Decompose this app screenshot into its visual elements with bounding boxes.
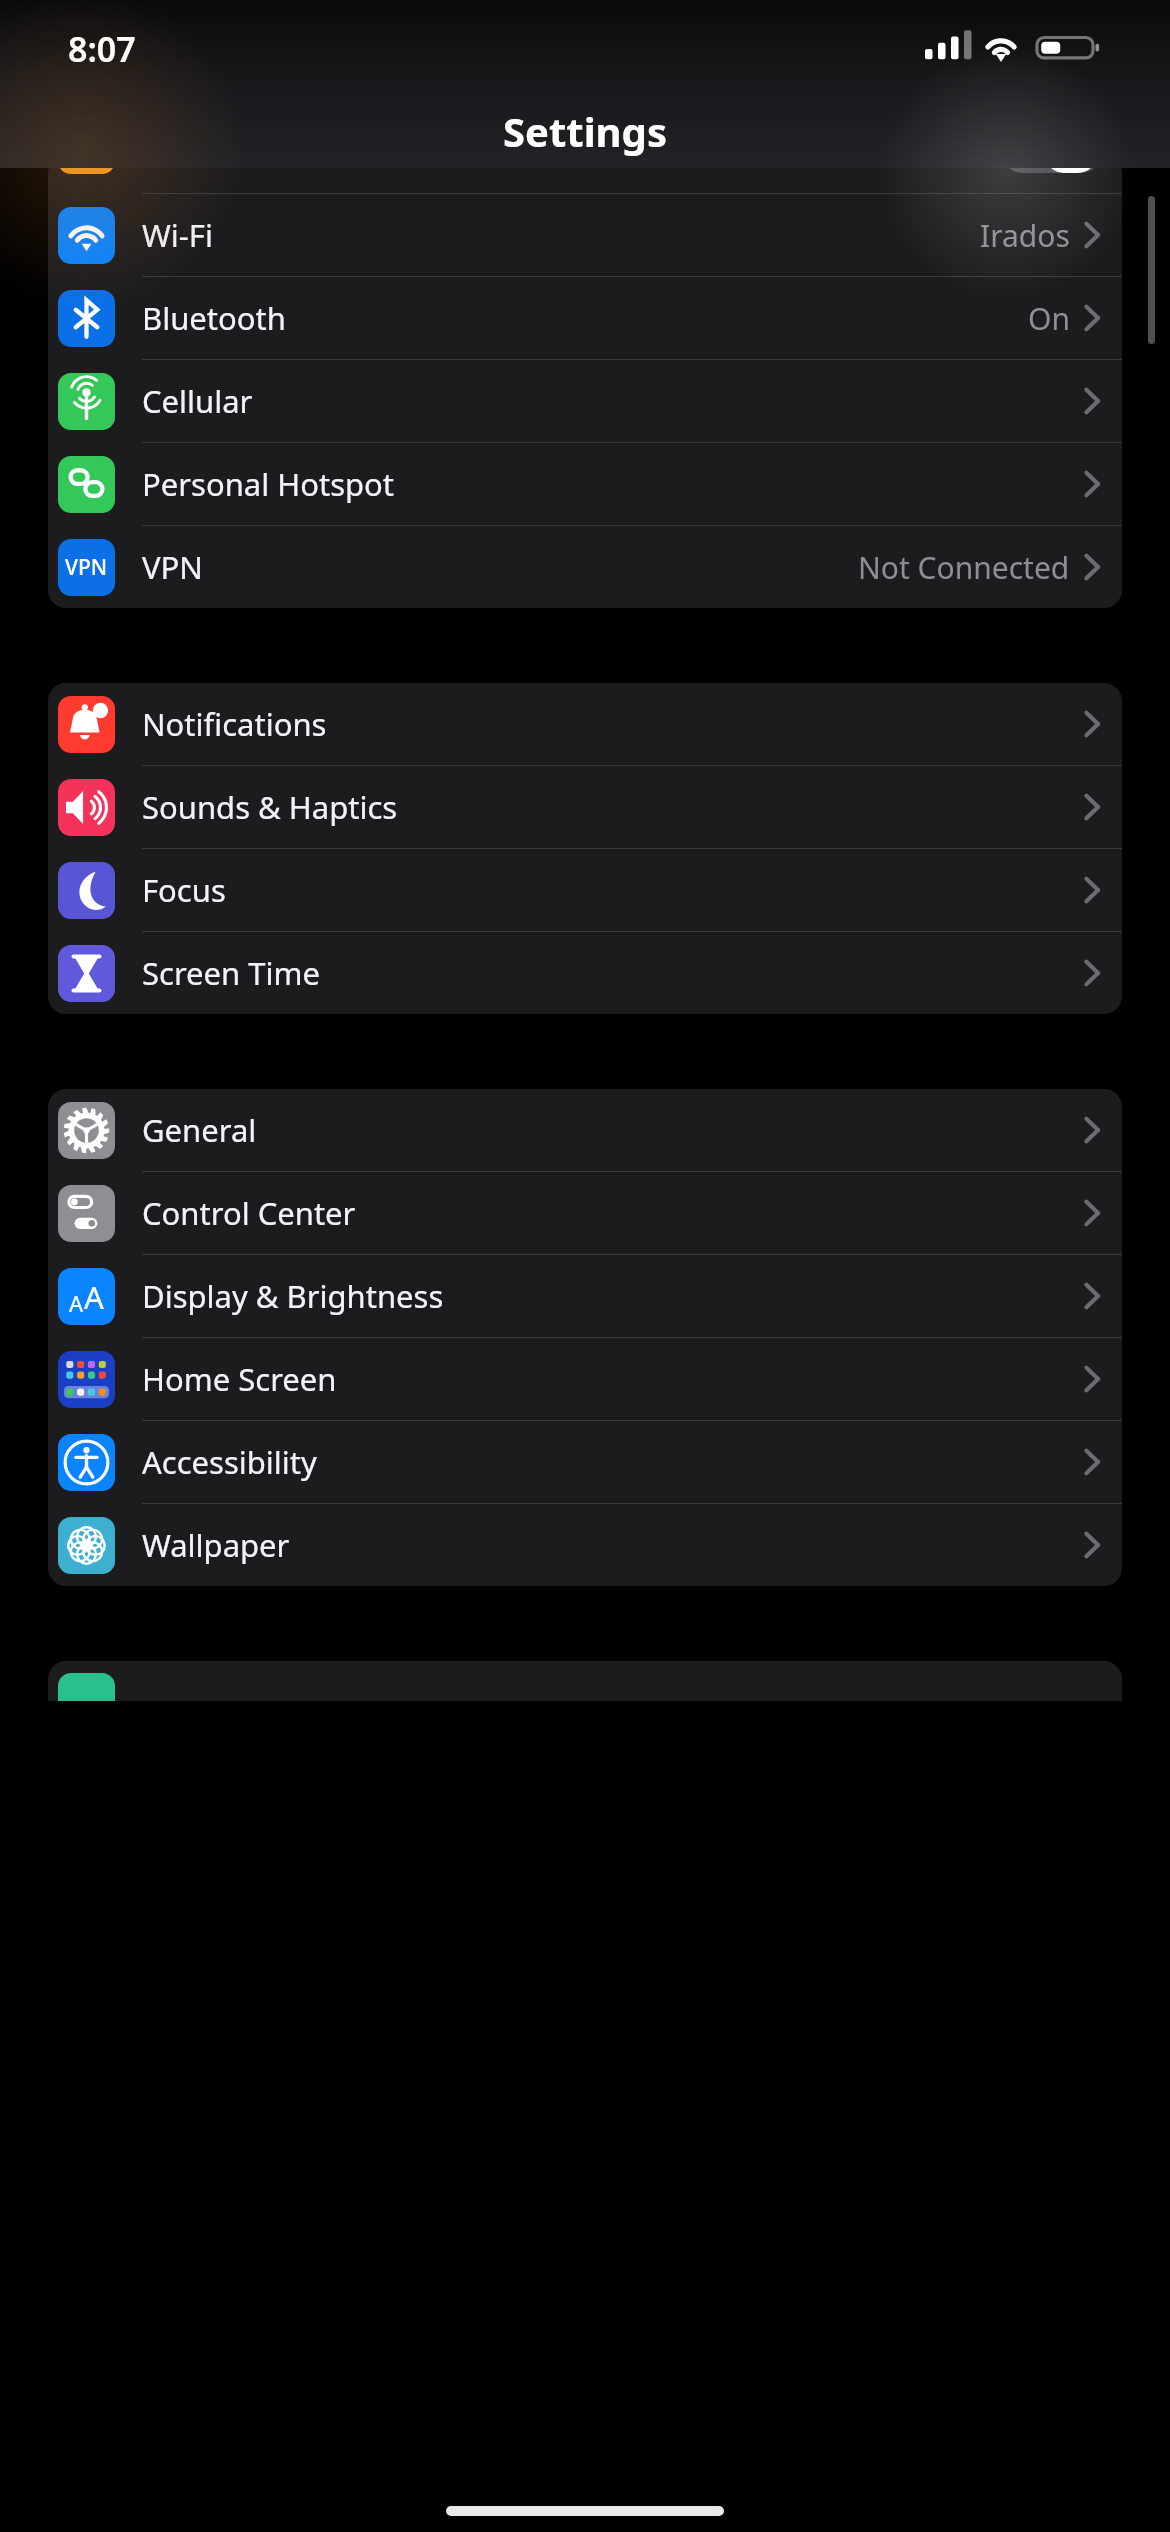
button[interactable]: Cellular [48, 360, 1122, 442]
staticText: Settings [503, 104, 667, 158]
staticText: Not Connected [858, 547, 1070, 588]
button[interactable]: A [48, 1255, 1122, 1337]
staticText: 8:07 [68, 26, 136, 72]
staticText: Cellular [142, 380, 253, 422]
staticText: Irados [980, 215, 1070, 256]
button[interactable]: Notifications [48, 683, 1122, 765]
staticText: Control Center [142, 1192, 356, 1234]
button[interactable]: VPN [48, 526, 1122, 608]
button[interactable]: Sounds & Haptics [48, 766, 1122, 848]
staticText: A [84, 1276, 104, 1318]
staticText: A [69, 1288, 84, 1318]
button[interactable]: Toggle [48, 155, 1122, 193]
staticText: Bluetooth [142, 297, 286, 339]
staticText: Home Screen [142, 1358, 337, 1400]
button[interactable]: General [48, 1089, 1122, 1171]
button[interactable]: Screen Time [48, 932, 1122, 1014]
button[interactable]: Home Screen [48, 1338, 1122, 1420]
staticText: Accessibility [142, 1441, 317, 1483]
button[interactable]: Wi-Fi [48, 194, 1122, 276]
button[interactable]: Focus [48, 849, 1122, 931]
button[interactable]: Bluetooth [48, 277, 1122, 359]
button[interactable]: Control Center [48, 1172, 1122, 1254]
staticText: Screen Time [142, 952, 320, 994]
staticText: On [1028, 298, 1070, 339]
staticText: Sounds & Haptics [142, 786, 398, 828]
button[interactable]: Toggle [1003, 155, 1100, 173]
button[interactable]: Wallpaper [48, 1504, 1122, 1586]
staticText: VPN [65, 553, 108, 582]
staticText: Notifications [142, 703, 327, 745]
button[interactable]: Personal Hotspot [48, 443, 1122, 525]
staticText: Display & Brightness [142, 1275, 444, 1317]
button[interactable]: Accessibility [48, 1421, 1122, 1503]
staticText: Wi-Fi [142, 214, 213, 256]
staticText: Wallpaper [142, 1524, 290, 1566]
staticText: General [142, 1109, 257, 1151]
staticText: VPN [142, 546, 203, 588]
staticText: Personal Hotspot [142, 463, 395, 505]
staticText: Focus [142, 869, 226, 911]
